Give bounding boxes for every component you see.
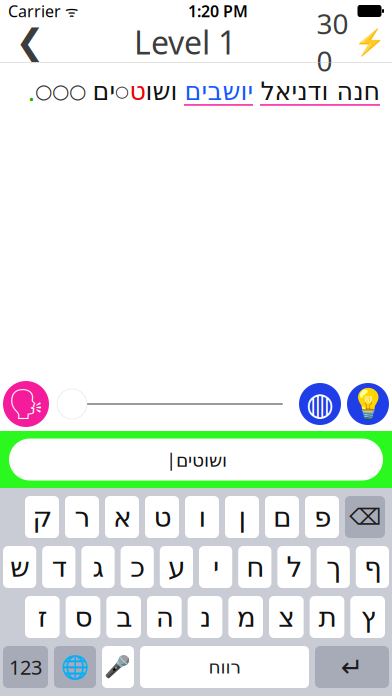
staticText: ב [116, 601, 132, 633]
button[interactable]: כ [121, 546, 154, 588]
button[interactable]: י [199, 546, 232, 588]
staticText: 123 [9, 654, 42, 680]
button[interactable]: ז [25, 596, 60, 638]
staticText: ה [155, 601, 173, 633]
staticText: רווח [208, 656, 241, 678]
staticText: ז [37, 601, 47, 633]
button[interactable]: Speed [299, 383, 341, 425]
staticText: ◍ [306, 386, 334, 422]
staticText: ע [167, 551, 185, 583]
staticText: מ [236, 601, 255, 633]
button[interactable]: Energy 300 [310, 22, 392, 62]
button[interactable]: Back [0, 22, 60, 62]
staticText: ↵ [341, 652, 363, 682]
button[interactable]: נ [188, 596, 222, 638]
staticText: ושו [145, 77, 177, 106]
staticText: נ [199, 601, 210, 633]
button[interactable]: Dictate [102, 646, 134, 688]
button[interactable]: ע [160, 546, 193, 588]
staticText: ט [129, 77, 145, 106]
button[interactable]: ץ [350, 596, 385, 638]
staticText: 🎤 [104, 655, 131, 679]
staticText: ⚡ [353, 27, 385, 56]
staticText: 300 [316, 5, 348, 79]
button[interactable]: ק [25, 496, 59, 538]
button[interactable]: ט [145, 496, 179, 538]
staticText: Carrier [8, 0, 61, 22]
button[interactable]: ה [147, 596, 182, 638]
staticText: ושוטים| [165, 447, 226, 472]
staticText: 🌐 [61, 654, 89, 680]
staticText: ❮ [15, 22, 44, 62]
button[interactable]: Delete [345, 496, 385, 538]
button[interactable]: Change language [54, 646, 96, 688]
button[interactable]: Return [315, 646, 389, 688]
staticText: צ [278, 601, 295, 633]
staticText: ᯤ [61, 1, 78, 21]
staticText: ט [153, 501, 171, 533]
button[interactable]: ד [42, 546, 75, 588]
staticText: א [112, 501, 131, 533]
staticText: ס [74, 601, 92, 633]
button[interactable]: ר [65, 496, 99, 538]
staticText: ם [272, 501, 291, 533]
staticText: ג [92, 551, 104, 583]
staticText: ל [286, 551, 302, 583]
staticText: ⌫ [349, 504, 381, 530]
button[interactable]: ם [265, 496, 299, 538]
staticText: ק [32, 501, 52, 533]
staticText: ך [326, 551, 341, 583]
button[interactable]: Speak [3, 381, 49, 427]
staticText: 💡 [349, 387, 386, 421]
button[interactable]: א [105, 496, 139, 538]
staticText: ץ [360, 601, 375, 633]
staticText: ף [363, 551, 381, 583]
button[interactable]: פ [305, 496, 339, 538]
staticText: ○ [115, 82, 129, 100]
staticText: חנה ודניאל [260, 77, 380, 106]
button[interactable]: ש [3, 546, 36, 588]
staticText: יושבים [184, 77, 253, 106]
staticText: כ [130, 551, 145, 583]
button[interactable]: ח [238, 546, 271, 588]
staticText: י [213, 551, 219, 583]
button[interactable]: Numbers [3, 646, 48, 688]
button[interactable]: Answer field [0, 431, 392, 488]
staticText: ת [318, 601, 336, 633]
staticText: ש [10, 551, 30, 583]
button[interactable]: ס [66, 596, 100, 638]
staticText: ן [238, 501, 246, 533]
button[interactable]: ך [317, 546, 350, 588]
staticText: 🗣 [7, 387, 44, 421]
staticText: פ [313, 501, 330, 533]
staticText: ו [198, 501, 206, 533]
staticText: ים [92, 77, 115, 106]
button[interactable]: מ [228, 596, 263, 638]
staticText: ר [74, 501, 90, 533]
button[interactable]: ת [310, 596, 344, 638]
staticText: ד [51, 551, 66, 583]
button[interactable]: ב [106, 596, 141, 638]
button[interactable]: Space [140, 646, 309, 688]
button[interactable]: Hint [347, 383, 389, 425]
button[interactable]: ף [356, 546, 389, 588]
staticText: Level 1 [134, 21, 236, 63]
button[interactable]: ן [225, 496, 259, 538]
staticText: ○○○ [35, 80, 92, 103]
button[interactable]: ל [277, 546, 311, 588]
staticText: 1:20 PM [188, 0, 248, 22]
staticText: . [28, 74, 35, 108]
button[interactable]: ו [185, 496, 219, 538]
staticText: ח [246, 551, 264, 583]
button[interactable]: צ [269, 596, 304, 638]
button[interactable]: ג [81, 546, 115, 588]
